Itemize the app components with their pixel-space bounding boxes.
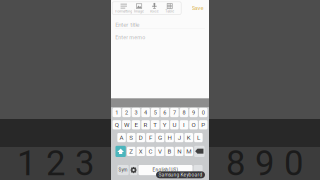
staticText: K — [187, 134, 191, 141]
staticText: 6 — [163, 109, 166, 116]
staticText: 2 — [125, 109, 128, 116]
staticText: E — [134, 121, 137, 128]
button[interactable]: 5 — [151, 108, 159, 117]
button[interactable]: Y — [161, 120, 169, 129]
button[interactable]: 0 — [199, 108, 207, 117]
button[interactable]: . — [194, 165, 203, 175]
staticText: English (US) — [152, 167, 178, 173]
staticText: Image — [134, 9, 144, 13]
button[interactable]: Formatting — [116, 2, 131, 15]
staticText: Save — [191, 5, 203, 11]
button[interactable]: Backspace — [194, 146, 204, 157]
button[interactable]: 6 — [161, 108, 169, 117]
staticText: A — [120, 134, 124, 141]
button[interactable]: 7 — [170, 108, 179, 117]
staticText: 8 — [182, 109, 185, 116]
button[interactable]: Shift — [115, 146, 126, 157]
button[interactable]: 2 — [122, 108, 131, 117]
staticText: . — [198, 167, 199, 173]
button[interactable]: W — [122, 120, 131, 129]
button[interactable]: P — [199, 120, 207, 129]
button[interactable]: H — [165, 133, 174, 142]
button[interactable]: Z — [127, 147, 135, 156]
staticText: 4 — [144, 109, 147, 116]
button[interactable]: L — [194, 133, 203, 142]
staticText: W — [124, 121, 129, 128]
button[interactable]: Save — [190, 2, 204, 14]
button[interactable]: U — [170, 120, 179, 129]
button[interactable]: 1 — [112, 108, 121, 117]
staticText: Y — [163, 121, 167, 128]
staticText: 3 — [75, 143, 94, 180]
button[interactable]: 3 — [132, 108, 140, 117]
button[interactable]: T — [151, 120, 159, 129]
button[interactable]: Table — [162, 2, 177, 15]
staticText: 3 — [134, 109, 137, 116]
staticText: Enter title — [115, 21, 139, 28]
staticText: Formatting — [115, 9, 132, 13]
staticText: 7 — [173, 109, 176, 116]
button[interactable]: V — [156, 147, 164, 156]
button[interactable]: 9 — [189, 108, 198, 117]
staticText: V — [158, 148, 162, 155]
staticText: 8 — [226, 143, 245, 180]
staticText: G — [158, 134, 162, 141]
staticText: C — [148, 148, 152, 155]
button[interactable]: 4 — [141, 108, 150, 117]
staticText: Z — [129, 148, 133, 155]
button[interactable]: M — [184, 147, 193, 156]
button[interactable]: C — [146, 147, 155, 156]
staticText: Enter memo — [115, 34, 145, 41]
button[interactable]: F — [146, 133, 155, 142]
staticText: J — [178, 134, 181, 141]
staticText: 1 — [17, 143, 36, 180]
staticText: M — [186, 148, 191, 155]
button[interactable]: Q — [112, 120, 121, 129]
button[interactable]: J — [175, 133, 183, 142]
button[interactable]: Image — [131, 2, 147, 15]
button[interactable]: Sym — [117, 165, 129, 175]
staticText: I — [183, 121, 185, 128]
staticText: Sym — [119, 167, 128, 173]
button[interactable]: O — [189, 120, 198, 129]
button[interactable]: D — [136, 133, 145, 142]
staticText: B — [168, 148, 172, 155]
button[interactable]: Keyboard settings — [130, 165, 137, 175]
button[interactable]: English (US) — [138, 165, 192, 175]
button[interactable]: K — [185, 133, 193, 142]
button[interactable]: Voice — [147, 2, 162, 15]
staticText: 9 — [255, 143, 274, 180]
staticText: O — [192, 121, 196, 128]
staticText: R — [144, 121, 148, 128]
staticText: L — [197, 134, 200, 141]
staticText: N — [177, 148, 181, 155]
button[interactable]: I — [180, 120, 188, 129]
staticText: 0 — [202, 109, 205, 116]
staticText: Table — [165, 9, 174, 13]
staticText: F — [149, 134, 152, 141]
staticText: S — [129, 134, 133, 141]
staticText: Q — [115, 121, 119, 128]
staticText: U — [172, 121, 176, 128]
button[interactable]: N — [175, 147, 183, 156]
button[interactable]: X — [136, 147, 145, 156]
staticText: X — [139, 148, 143, 155]
button[interactable]: 8 — [180, 108, 188, 117]
button[interactable]: S — [127, 133, 135, 142]
staticText: 2 — [46, 143, 65, 180]
staticText: D — [139, 134, 143, 141]
staticText: 5 — [154, 109, 157, 116]
button[interactable]: A — [117, 133, 126, 142]
button[interactable]: R — [141, 120, 150, 129]
staticText: 0 — [284, 143, 303, 180]
staticText: H — [168, 134, 172, 141]
staticText: T — [153, 121, 157, 128]
button[interactable]: G — [156, 133, 164, 142]
staticText: Voice — [150, 9, 159, 13]
staticText: Samsung Keyboard — [158, 172, 202, 178]
staticText: P — [201, 121, 205, 128]
button[interactable]: E — [132, 120, 140, 129]
staticText: 1 — [115, 109, 118, 116]
staticText: 9 — [192, 109, 195, 116]
button[interactable]: B — [165, 147, 174, 156]
